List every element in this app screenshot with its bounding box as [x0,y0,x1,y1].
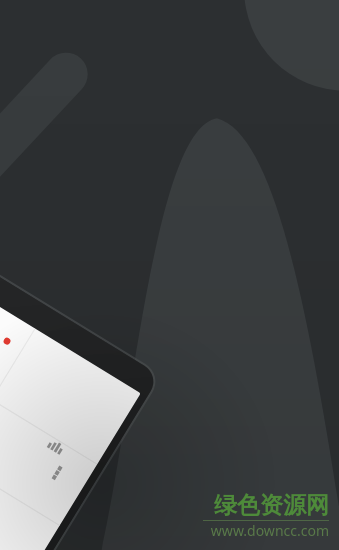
staticText: www.downcc.com [210,521,329,540]
staticText: 绿色资源网 [214,491,329,520]
